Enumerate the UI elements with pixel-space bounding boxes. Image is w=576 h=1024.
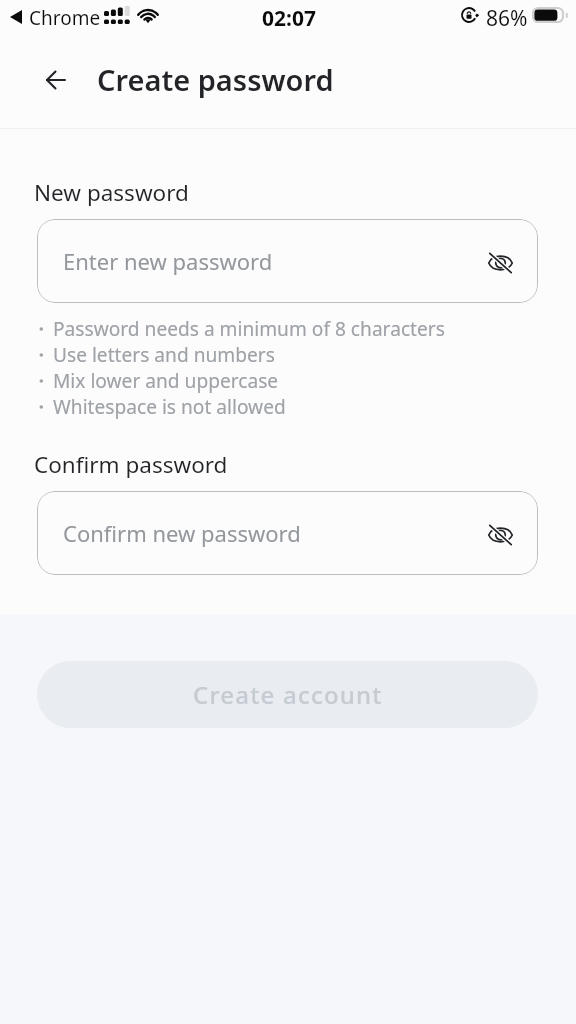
staticText: 02:07 <box>262 4 316 33</box>
staticText: Create password <box>97 60 334 99</box>
button[interactable]: Confirm new password <box>37 491 538 575</box>
staticText: Use letters and numbers <box>53 342 275 368</box>
staticText: Whitespace is not allowed <box>53 394 286 420</box>
staticText: Enter new password <box>63 246 273 276</box>
button[interactable]: Create account <box>37 661 538 728</box>
button[interactable]: Back <box>32 56 80 104</box>
button[interactable]: Show new password <box>481 244 519 282</box>
button[interactable]: Enter new password <box>37 219 538 303</box>
staticText: 86% <box>486 4 528 33</box>
staticText: New password <box>34 177 189 208</box>
staticText: Create account <box>193 678 383 711</box>
button[interactable]: Show confirm password <box>481 516 519 554</box>
staticText: Confirm new password <box>63 518 301 548</box>
staticText: Mix lower and uppercase <box>53 368 279 394</box>
staticText: Confirm password <box>34 449 228 480</box>
staticText: Password needs a minimum of 8 characters <box>53 316 445 342</box>
staticText: Chrome <box>29 5 101 31</box>
